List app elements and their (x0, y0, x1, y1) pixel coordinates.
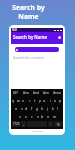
staticText: Search by Name (13, 34, 47, 40)
staticText: k (52, 106, 54, 111)
staticText: n (47, 114, 50, 119)
button[interactable]: f (29, 105, 34, 111)
button[interactable]: Search (54, 121, 62, 127)
button[interactable]: . (48, 121, 53, 127)
staticText: Name (0, 12, 57, 21)
button[interactable]: y (37, 97, 42, 103)
staticText: r (29, 98, 31, 103)
button[interactable]: s (19, 105, 24, 111)
staticText: f (31, 106, 33, 111)
button[interactable]: v (35, 113, 40, 119)
staticText: e (22, 98, 25, 103)
staticText: o (54, 98, 57, 103)
staticText: v (37, 114, 39, 119)
button[interactable]: Ana (23, 91, 29, 95)
button[interactable]: More options (58, 36, 61, 39)
button[interactable]: z (17, 113, 22, 119)
button[interactable]: k (50, 105, 55, 111)
staticText: p (59, 98, 62, 103)
staticText: q (12, 98, 15, 103)
button[interactable]: b (40, 113, 45, 119)
button[interactable]: g (35, 105, 40, 111)
staticText: Search for a name (13, 55, 44, 60)
staticText: u (43, 98, 46, 103)
staticText: j (47, 106, 48, 111)
button[interactable]: o (53, 97, 58, 103)
staticText: w (17, 98, 20, 103)
button[interactable]: x (23, 113, 28, 119)
staticText: Search by (0, 3, 57, 12)
button[interactable]: w (16, 97, 21, 103)
button[interactable]: t (32, 97, 37, 103)
staticText: i (50, 98, 51, 103)
button[interactable]: n (46, 113, 51, 119)
staticText: h (41, 106, 44, 111)
button[interactable]: a (14, 105, 19, 111)
button[interactable]: GIF (13, 91, 19, 95)
button[interactable]: e (21, 97, 26, 103)
staticText: g (36, 106, 39, 111)
staticText: d (25, 106, 28, 111)
button[interactable]: , (21, 121, 26, 127)
staticText: m (53, 114, 57, 119)
button[interactable]: m (52, 113, 57, 119)
button[interactable]: Anna (53, 91, 61, 95)
staticText: s (21, 106, 23, 111)
staticText: b (41, 114, 44, 119)
button[interactable]: q (11, 97, 16, 103)
button[interactable]: And (33, 91, 39, 95)
button[interactable]: p (58, 97, 63, 103)
button[interactable]: c (29, 113, 34, 119)
button[interactable]: ?123 (12, 121, 20, 127)
staticText: , (23, 122, 24, 126)
staticText: y (39, 98, 41, 103)
staticText: 9:41 (12, 28, 18, 32)
staticText: t (34, 98, 36, 103)
button[interactable]: d (24, 105, 29, 111)
staticText: x (25, 114, 27, 119)
staticText: ?123 (13, 122, 20, 126)
button[interactable]: Ann (43, 91, 49, 95)
staticText: a (15, 106, 18, 111)
button[interactable]: u (42, 97, 47, 103)
button[interactable] (15, 47, 59, 52)
button[interactable]: j (45, 105, 50, 111)
button[interactable]: h (40, 105, 45, 111)
button[interactable]: r (27, 97, 32, 103)
staticText: l (57, 106, 58, 111)
button[interactable]: l (55, 105, 60, 111)
staticText: c (31, 114, 33, 119)
button[interactable]: i (48, 97, 53, 103)
staticText: . (50, 122, 51, 126)
staticText: z (19, 114, 21, 119)
